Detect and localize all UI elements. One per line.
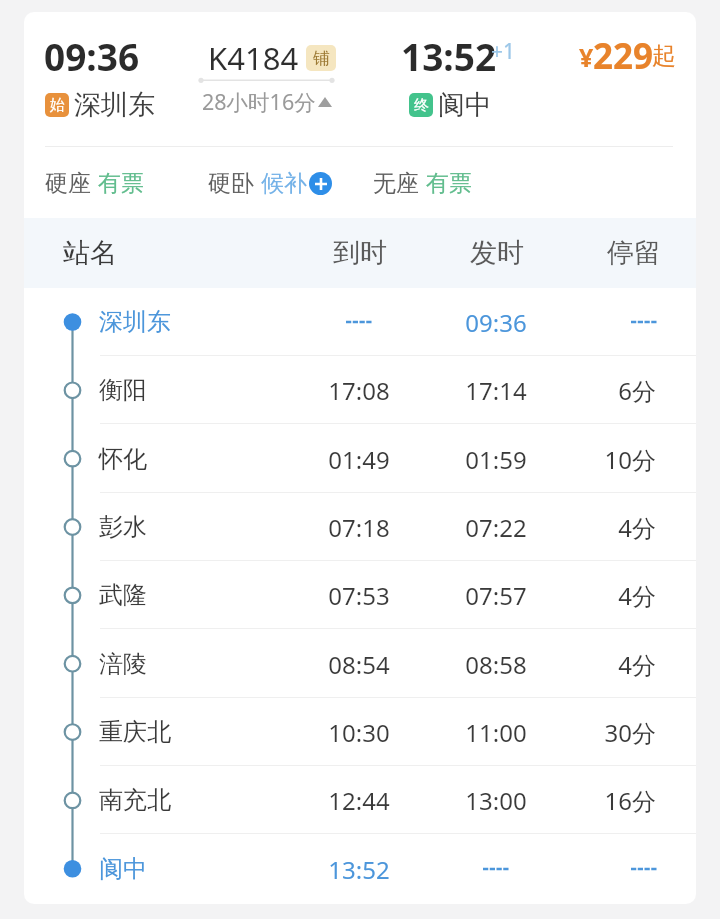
staticText: 12:44 — [299, 784, 419, 817]
staticText: 发时 — [470, 236, 524, 270]
staticText: 站名 — [63, 236, 117, 270]
staticText: 16分 — [536, 784, 656, 817]
staticText: 到时 — [333, 236, 387, 270]
staticText: 17:14 — [436, 374, 556, 407]
staticText: K4184 — [208, 37, 299, 79]
staticText: 07:18 — [299, 511, 419, 544]
staticText: 229 — [593, 32, 654, 80]
staticText: 01:59 — [436, 443, 556, 476]
staticText: 怀化 — [99, 444, 147, 474]
staticText: 6分 — [536, 374, 656, 407]
button[interactable]: 怀化 — [24, 425, 696, 493]
button[interactable]: 武隆 — [24, 561, 696, 629]
staticText: 30分 — [536, 716, 656, 749]
staticText: 11:00 — [436, 716, 556, 749]
staticText: 有票 — [426, 169, 472, 198]
staticText: 始 — [50, 96, 65, 115]
button[interactable]: 硬座 — [45, 169, 144, 198]
staticText: 13:52 — [401, 31, 497, 81]
staticText: 07:22 — [436, 511, 556, 544]
staticText: 4分 — [536, 648, 656, 681]
staticText: ¥ — [579, 40, 594, 74]
staticText: 衡阳 — [99, 375, 147, 405]
button[interactable]: 深圳东 — [24, 288, 696, 356]
button[interactable]: 南充北 — [24, 766, 696, 834]
button[interactable]: 硬卧 — [208, 169, 332, 198]
staticText: 13:52 — [299, 853, 419, 886]
staticText: 09:36 — [436, 306, 556, 339]
staticText: 铺 — [313, 48, 330, 69]
button[interactable]: 重庆北 — [24, 698, 696, 766]
button[interactable]: 彭水 — [24, 493, 696, 561]
staticText: 4分 — [536, 579, 656, 612]
staticText: 07:57 — [436, 579, 556, 612]
staticText: 重庆北 — [99, 717, 171, 747]
staticText: 深圳东 — [99, 307, 171, 337]
button[interactable]: K4184 — [208, 37, 336, 79]
staticText: 终 — [414, 96, 429, 115]
staticText: 07:53 — [299, 579, 419, 612]
staticText: 硬卧 — [208, 169, 254, 198]
staticText: 17:08 — [299, 374, 419, 407]
button[interactable]: 终 — [409, 88, 492, 122]
staticText: 有票 — [98, 169, 144, 198]
staticText: 4分 — [536, 511, 656, 544]
staticText: 涪陵 — [99, 649, 147, 679]
staticText: 起 — [652, 41, 676, 71]
staticText: 10分 — [536, 443, 656, 476]
staticText: 08:54 — [299, 648, 419, 681]
staticText: 13:00 — [436, 784, 556, 817]
staticText: 彭水 — [99, 512, 147, 542]
button[interactable]: 涪陵 — [24, 630, 696, 698]
staticText: 10:30 — [299, 716, 419, 749]
staticText: 硬座 — [45, 169, 91, 198]
staticText: 08:58 — [436, 648, 556, 681]
staticText: 阆中 — [99, 854, 147, 884]
staticText: 无座 — [373, 169, 419, 198]
staticText: 南充北 — [99, 785, 171, 815]
staticText: 深圳东 — [74, 88, 155, 122]
staticText: +1 — [491, 37, 516, 66]
button[interactable]: ¥ — [571, 26, 632, 74]
button[interactable]: 始 — [45, 88, 155, 122]
staticText: 09:36 — [44, 31, 140, 81]
staticText: 阆中 — [438, 88, 492, 122]
button[interactable]: 衡阳 — [24, 356, 696, 424]
staticText: 候补 — [261, 169, 307, 198]
button[interactable]: 28小时16分 — [202, 87, 332, 116]
staticText: 停留 — [607, 236, 661, 270]
staticText: 01:49 — [299, 443, 419, 476]
staticText: 28小时16分 — [202, 87, 316, 116]
button[interactable]: 阆中 — [24, 835, 696, 903]
button[interactable]: 无座 — [373, 169, 472, 198]
staticText: 武隆 — [99, 580, 147, 610]
